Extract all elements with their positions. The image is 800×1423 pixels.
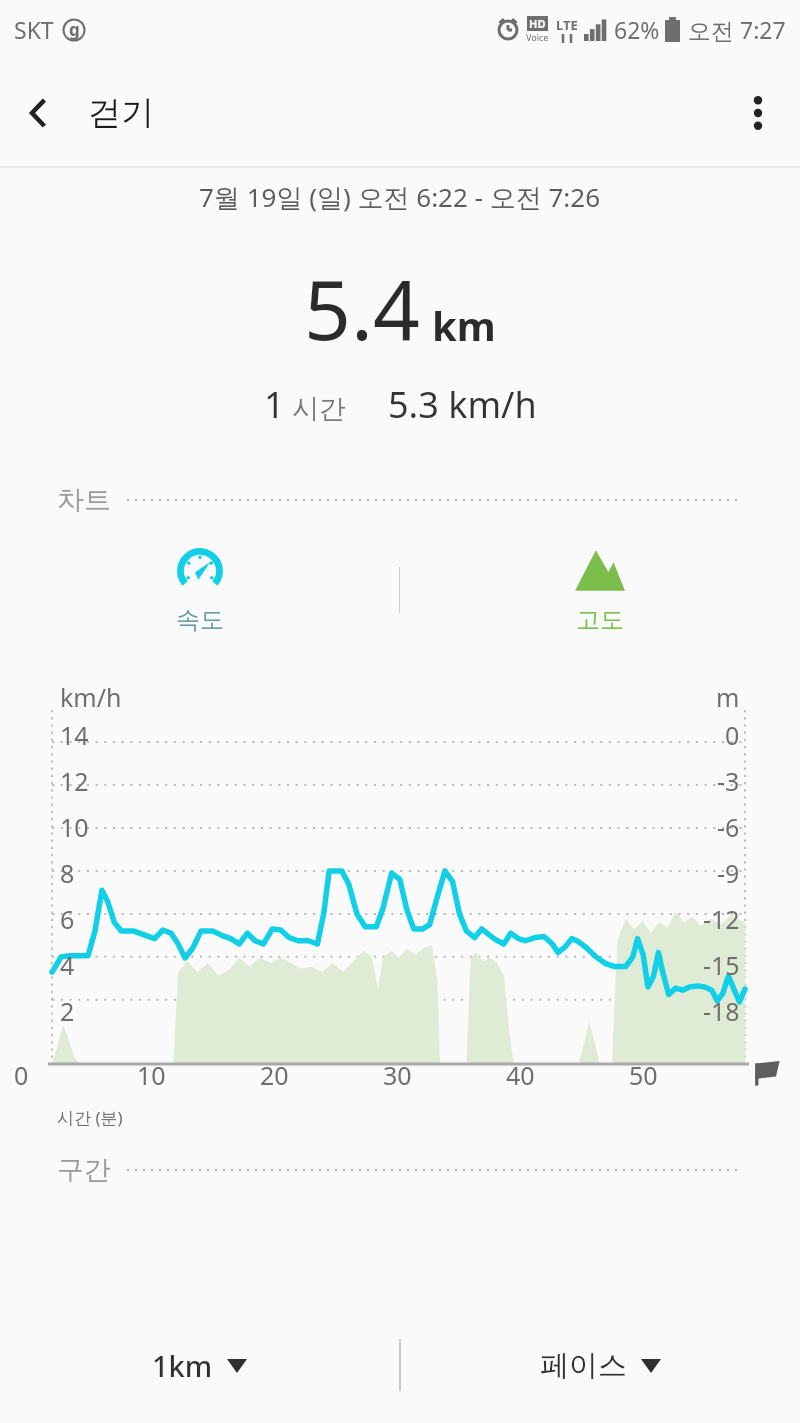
- staticText: 10: [137, 1058, 166, 1092]
- staticText: -3: [717, 764, 740, 798]
- staticText: 오전 7:27: [688, 14, 786, 45]
- staticText: 5.3 km/h: [388, 380, 537, 429]
- staticText: 구간: [57, 1153, 111, 1187]
- staticText: 페이스: [540, 1347, 627, 1384]
- staticText: -18: [703, 994, 740, 1028]
- staticText: 차트: [57, 483, 111, 517]
- staticText: Voice: [526, 31, 549, 43]
- staticText: 5.4: [304, 252, 420, 364]
- staticText: 62%: [614, 14, 660, 45]
- staticText: km: [432, 298, 496, 352]
- staticText: 0: [14, 1058, 29, 1092]
- staticText: 40: [506, 1058, 535, 1092]
- staticText: 걷기: [88, 92, 154, 134]
- button[interactable]: More options: [716, 58, 800, 168]
- staticText: 6: [60, 902, 75, 936]
- staticText: HD: [529, 16, 546, 31]
- button[interactable]: 속도: [0, 537, 399, 642]
- staticText: -15: [703, 948, 740, 982]
- staticText: 1km: [152, 1346, 213, 1385]
- button[interactable]: 고도: [400, 537, 800, 642]
- staticText: 4: [60, 948, 75, 982]
- staticText: 8: [60, 856, 75, 890]
- staticText: -12: [703, 902, 740, 936]
- button[interactable]: 1km: [0, 1325, 399, 1405]
- button[interactable]: 페이스: [401, 1325, 800, 1405]
- button[interactable]: Back: [0, 75, 76, 151]
- staticText: -6: [717, 810, 740, 844]
- staticText: g: [69, 18, 80, 41]
- staticText: 0: [725, 718, 740, 752]
- staticText: SKT: [14, 14, 54, 45]
- staticText: km/h: [60, 680, 122, 714]
- staticText: 고도: [576, 605, 624, 635]
- staticText: -9: [717, 856, 740, 890]
- staticText: m: [716, 680, 740, 714]
- staticText: 7월 19일 (일) 오전 6:22 - 오전 7:26: [199, 179, 601, 215]
- staticText: 1: [264, 380, 285, 429]
- staticText: LTE: [556, 16, 578, 34]
- staticText: 시간: [292, 392, 346, 426]
- staticText: 12: [60, 764, 89, 798]
- staticText: 50: [629, 1058, 658, 1092]
- staticText: 속도: [176, 605, 224, 635]
- staticText: 30: [383, 1058, 412, 1092]
- staticText: 10: [60, 810, 89, 844]
- staticText: 시간 (분): [57, 1106, 123, 1129]
- staticText: 2: [60, 994, 75, 1028]
- staticText: 14: [60, 718, 89, 752]
- staticText: 20: [260, 1058, 289, 1092]
- other: Finish: [752, 1058, 786, 1088]
